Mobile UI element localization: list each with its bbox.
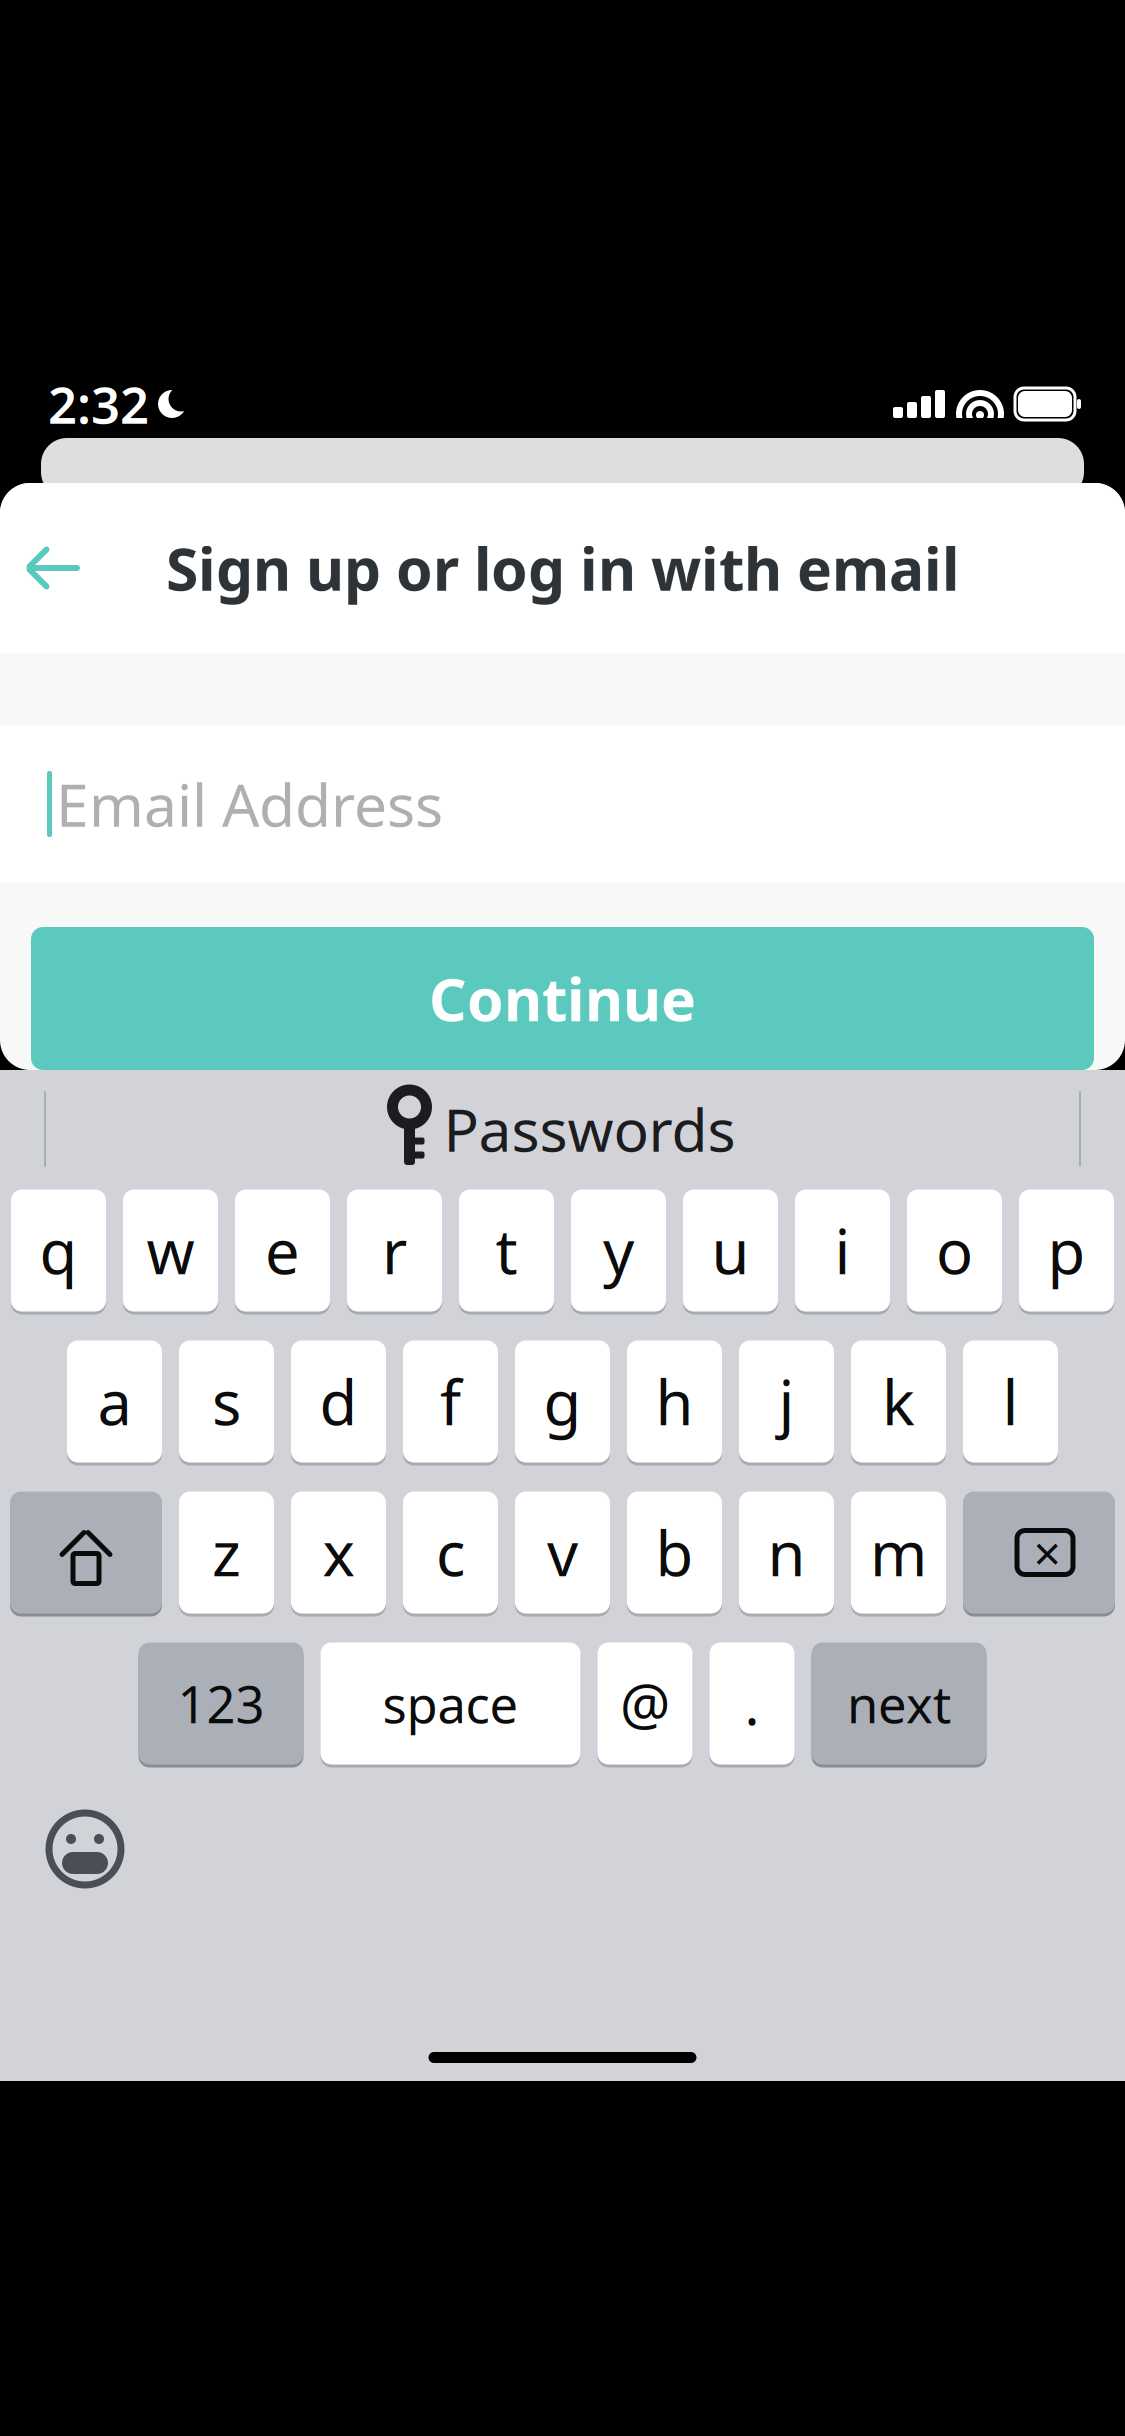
button[interactable]: z bbox=[179, 1490, 274, 1615]
button[interactable]: l bbox=[963, 1339, 1058, 1464]
button[interactable]: Continue bbox=[31, 927, 1094, 1070]
button[interactable]: u bbox=[683, 1188, 778, 1313]
button[interactable]: q bbox=[11, 1188, 106, 1313]
button[interactable]: x bbox=[291, 1490, 386, 1615]
staticText: . bbox=[744, 1666, 759, 1741]
button[interactable]: w bbox=[123, 1188, 218, 1313]
staticText: h bbox=[655, 1361, 693, 1442]
button[interactable]: y bbox=[571, 1188, 666, 1313]
button[interactable]: next bbox=[811, 1641, 986, 1766]
staticText: u bbox=[711, 1210, 749, 1291]
staticText: space bbox=[382, 1670, 518, 1737]
staticText: f bbox=[440, 1361, 461, 1442]
button[interactable]: Passwords bbox=[369, 1079, 755, 1179]
button[interactable]: h bbox=[627, 1339, 722, 1464]
staticText: r bbox=[382, 1210, 407, 1291]
staticText: m bbox=[870, 1512, 927, 1593]
button[interactable]: p bbox=[1019, 1188, 1114, 1313]
button[interactable]: v bbox=[515, 1490, 610, 1615]
staticText: @ bbox=[620, 1666, 670, 1741]
staticText: l bbox=[1002, 1361, 1018, 1442]
staticText: x bbox=[322, 1512, 354, 1593]
staticText: n bbox=[767, 1512, 805, 1593]
staticText: v bbox=[547, 1512, 578, 1593]
staticText: i bbox=[834, 1210, 850, 1291]
staticText: b bbox=[655, 1512, 693, 1593]
staticText: y bbox=[603, 1210, 634, 1291]
button[interactable]: n bbox=[739, 1490, 834, 1615]
staticText: q bbox=[39, 1210, 77, 1291]
staticText: Continue bbox=[429, 959, 696, 1037]
button[interactable]: a bbox=[67, 1339, 162, 1464]
staticText: Sign up or log in with email bbox=[166, 529, 959, 607]
staticText: a bbox=[97, 1361, 131, 1442]
staticText: o bbox=[936, 1210, 973, 1291]
staticText: p bbox=[1047, 1210, 1085, 1291]
staticText: z bbox=[212, 1512, 241, 1593]
staticText: k bbox=[882, 1361, 915, 1442]
button[interactable]: f bbox=[403, 1339, 498, 1464]
staticText: j bbox=[778, 1361, 794, 1442]
button[interactable]: r bbox=[347, 1188, 442, 1313]
staticText: 123 bbox=[177, 1670, 264, 1737]
staticText: w bbox=[146, 1210, 194, 1291]
button[interactable]: k bbox=[851, 1339, 946, 1464]
button[interactable]: 123 bbox=[138, 1641, 303, 1766]
staticText: next bbox=[847, 1670, 951, 1737]
button[interactable]: m bbox=[851, 1490, 946, 1615]
staticText: g bbox=[543, 1361, 581, 1442]
button[interactable]: i bbox=[795, 1188, 890, 1313]
button[interactable]: e bbox=[235, 1188, 330, 1313]
button[interactable]: j bbox=[739, 1339, 834, 1464]
button[interactable]: . bbox=[709, 1641, 794, 1766]
button[interactable]: Shift bbox=[10, 1490, 162, 1615]
staticText: × bbox=[1033, 1521, 1060, 1584]
staticText: d bbox=[319, 1361, 357, 1442]
button[interactable]: c bbox=[403, 1490, 498, 1615]
staticText: s bbox=[212, 1361, 241, 1442]
staticText: Passwords bbox=[443, 1090, 735, 1168]
staticText: Email Address bbox=[56, 765, 443, 843]
button[interactable]: t bbox=[459, 1188, 554, 1313]
staticText: t bbox=[495, 1210, 517, 1291]
button[interactable]: Emoji bbox=[0, 1794, 128, 1904]
button[interactable]: s bbox=[179, 1339, 274, 1464]
button[interactable]: o bbox=[907, 1188, 1002, 1313]
staticText: 2:32 bbox=[48, 370, 149, 438]
button[interactable]: b bbox=[627, 1490, 722, 1615]
button[interactable]: Delete bbox=[963, 1490, 1115, 1615]
button[interactable]: g bbox=[515, 1339, 610, 1464]
button[interactable]: @ bbox=[597, 1641, 692, 1766]
staticText: c bbox=[436, 1512, 465, 1593]
button[interactable]: space bbox=[320, 1641, 580, 1766]
button[interactable]: d bbox=[291, 1339, 386, 1464]
staticText: e bbox=[265, 1210, 300, 1291]
button[interactable]: Back bbox=[0, 513, 108, 623]
